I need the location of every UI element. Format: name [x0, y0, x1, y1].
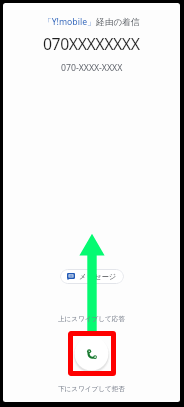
staticText: 下にスワイプして拒否 — [58, 385, 126, 393]
staticText: 070-XXXX-XXXX — [61, 62, 123, 74]
button[interactable]: Answer call — [74, 336, 109, 371]
staticText: 070XXXXXXXX — [43, 33, 140, 55]
staticText: メッセージ — [79, 272, 117, 281]
staticText: 上にスワイプして応答 — [58, 315, 126, 323]
button[interactable]: メッセージ — [60, 269, 124, 284]
staticText: 経由の着信 — [96, 17, 140, 28]
staticText: 「Y!mobile」 — [43, 16, 96, 28]
